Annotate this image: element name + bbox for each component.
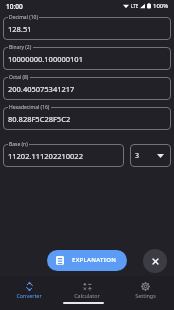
staticText: 3 (135, 151, 140, 161)
staticText: 128.51 (8, 24, 32, 34)
staticText: Base (n) (9, 141, 28, 148)
button[interactable]: 11202.111202210022 (3, 144, 124, 167)
staticText: Hexadecimal (16) (9, 104, 50, 111)
staticText: 10:00 (6, 2, 23, 11)
button[interactable]: Close (143, 249, 167, 273)
staticText: 10000000.100000101 (8, 54, 83, 64)
staticText: Octal (8) (9, 74, 29, 81)
button[interactable]: 128.51 (3, 17, 171, 40)
button[interactable]: Converter (0, 282, 58, 299)
button[interactable]: Settings (116, 282, 174, 299)
button[interactable]: Base selector (130, 144, 171, 167)
button[interactable]: Calculator (58, 282, 116, 299)
staticText: 80.828F5C28F5C2 (8, 114, 71, 124)
button[interactable]: 200.405075341217 (3, 77, 171, 100)
staticText: 100% (153, 2, 169, 10)
staticText: LTE (131, 3, 139, 9)
staticText: Binary (2) (9, 44, 32, 51)
staticText: Settings (135, 292, 156, 299)
staticText: 11202.111202210022 (8, 151, 83, 161)
staticText: EXPLANATION (72, 256, 117, 264)
staticText: 200.405075341217 (8, 84, 75, 94)
button[interactable]: 10000000.100000101 (3, 47, 171, 70)
staticText: Calculator (74, 292, 100, 299)
button[interactable]: 80.828F5C28F5C2 (3, 107, 171, 130)
staticText: Decimal (10) (9, 14, 38, 21)
staticText: Converter (16, 292, 42, 299)
button[interactable]: EXPLANATION (47, 250, 127, 271)
